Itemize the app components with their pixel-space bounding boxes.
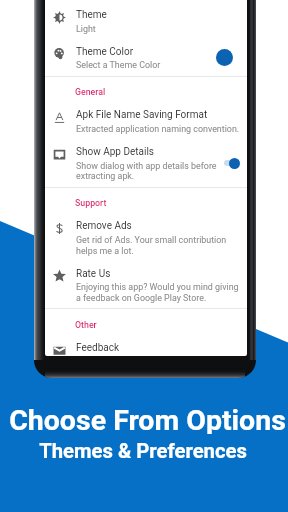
button[interactable]: [45, 261, 247, 308]
button[interactable]: [45, 335, 247, 356]
staticText: Apk File Name Saving Format: [76, 109, 208, 121]
button[interactable]: [45, 213, 247, 260]
staticText: Theme Color: [76, 46, 134, 58]
staticText: a feedback on Google Play Store.: [76, 293, 207, 303]
staticText: Select a Theme Color: [76, 60, 161, 70]
staticText: Other: [75, 320, 97, 330]
staticText: Feedback: [76, 342, 120, 354]
staticText: Themes & Preferences: [39, 439, 247, 461]
staticText: Remove Ads: [76, 220, 132, 232]
staticText: General: [75, 87, 106, 97]
staticText: extracting apk.: [76, 171, 135, 181]
button[interactable]: [45, 39, 247, 76]
staticText: Choose From Options: [9, 404, 286, 434]
staticText: Get rid of Ads. Your small contribution: [76, 235, 227, 245]
button[interactable]: [45, 103, 247, 140]
staticText: Rate Us: [76, 268, 111, 280]
staticText: Show App Details: [76, 146, 154, 158]
staticText: Extracted application naming convention.: [76, 124, 240, 134]
staticText: Enjoying this app? Would you mind giving: [76, 282, 239, 292]
button[interactable]: [45, 139, 247, 186]
staticText: helps me a lot.: [76, 246, 134, 256]
staticText: Support: [75, 198, 107, 208]
button[interactable]: Pick theme colour: [216, 49, 233, 66]
button[interactable]: Show app details switch: [223, 155, 243, 171]
staticText: Show dialog with app details before: [76, 161, 217, 171]
button[interactable]: [45, 3, 247, 40]
staticText: Theme: [76, 9, 107, 21]
staticText: Light: [76, 24, 96, 34]
